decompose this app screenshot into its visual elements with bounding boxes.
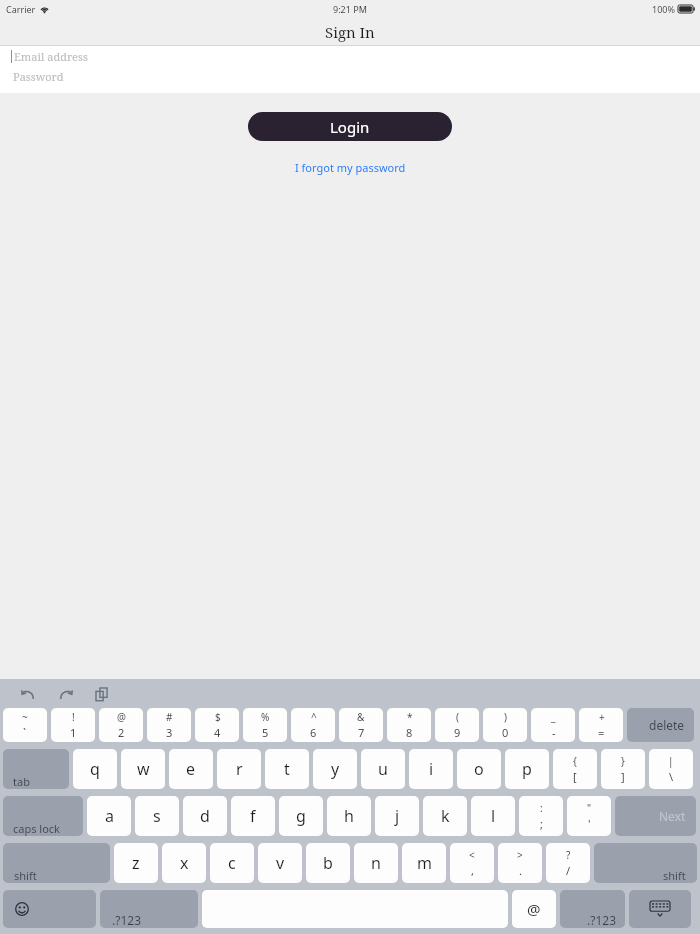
button[interactable]: q <box>73 749 117 789</box>
button[interactable]: b <box>306 843 350 883</box>
button[interactable]: Next <box>615 796 696 836</box>
button[interactable]: h <box>327 796 371 836</box>
button[interactable]: o <box>457 749 501 789</box>
staticText: Login <box>330 117 370 137</box>
button[interactable]: " <box>567 796 611 836</box>
button[interactable]: + <box>579 708 623 742</box>
staticText: + <box>599 710 605 724</box>
button[interactable]: delete <box>627 708 694 742</box>
staticText: .?123 <box>112 912 142 928</box>
staticText: Password <box>13 69 64 84</box>
button[interactable]: Login <box>248 112 452 141</box>
staticText: delete <box>649 717 685 733</box>
staticText: 8 <box>406 725 413 740</box>
staticText: s <box>153 805 161 827</box>
button[interactable]: ( <box>435 708 479 742</box>
staticText: n <box>371 852 381 874</box>
button[interactable]: c <box>210 843 254 883</box>
button[interactable]: } <box>601 749 645 789</box>
button[interactable]: _ <box>531 708 575 742</box>
button[interactable]: s <box>135 796 179 836</box>
staticText: d <box>200 805 210 827</box>
staticText: r <box>236 758 243 780</box>
button[interactable]: .?123 <box>560 890 625 928</box>
staticText: q <box>90 758 100 780</box>
button[interactable]: Redo <box>53 682 77 706</box>
button[interactable]: { <box>553 749 597 789</box>
button[interactable]: Password <box>0 66 700 86</box>
staticText: ( <box>456 710 459 724</box>
staticText: ] <box>621 769 625 784</box>
button[interactable]: ? <box>546 843 590 883</box>
staticText: & <box>357 710 365 724</box>
button[interactable]: ! <box>51 708 95 742</box>
staticText: | <box>668 754 674 768</box>
button[interactable]: & <box>339 708 383 742</box>
button[interactable]: tab <box>3 749 69 789</box>
button[interactable]: $ <box>195 708 239 742</box>
button[interactable]: ^ <box>291 708 335 742</box>
button[interactable]: k <box>423 796 467 836</box>
staticText: caps lock <box>13 821 60 836</box>
staticText: ; <box>540 816 543 831</box>
button[interactable]: v <box>258 843 302 883</box>
button[interactable]: m <box>402 843 446 883</box>
button[interactable]: caps lock <box>3 796 83 836</box>
staticText: shift <box>663 868 686 883</box>
button[interactable]: r <box>217 749 261 789</box>
button[interactable]: a <box>87 796 131 836</box>
staticText: / <box>566 863 571 878</box>
button[interactable]: < <box>450 843 494 883</box>
button[interactable]: ) <box>483 708 527 742</box>
button[interactable]: ~ <box>3 708 47 742</box>
button[interactable]: t <box>265 749 309 789</box>
button[interactable]: * <box>387 708 431 742</box>
button[interactable]: .?123 <box>100 890 198 928</box>
staticText: Email address <box>14 49 88 64</box>
button[interactable]: I forgot my password <box>289 158 412 177</box>
button[interactable]: shift <box>3 843 110 883</box>
staticText: t <box>284 758 290 780</box>
staticText: 1 <box>70 725 77 740</box>
button[interactable]: j <box>375 796 419 836</box>
button[interactable]: # <box>147 708 191 742</box>
staticText: } <box>621 754 625 768</box>
button[interactable]: | <box>649 749 693 789</box>
staticText: tab <box>13 774 30 789</box>
staticText: y <box>331 758 340 780</box>
staticText: { <box>573 754 577 768</box>
button[interactable]: p <box>505 749 549 789</box>
button[interactable]: g <box>279 796 323 836</box>
staticText: Next <box>659 808 686 824</box>
button[interactable]: : <box>519 796 563 836</box>
button[interactable]: @ <box>512 890 556 928</box>
staticText: p <box>522 758 532 780</box>
button[interactable]: Paste <box>90 682 114 706</box>
button[interactable]: z <box>114 843 158 883</box>
button[interactable]: e <box>169 749 213 789</box>
staticText: o <box>474 758 484 780</box>
button[interactable]: @ <box>99 708 143 742</box>
button[interactable]: Email address <box>0 46 700 66</box>
staticText: h <box>344 805 354 827</box>
staticText: < <box>469 848 475 862</box>
button[interactable]: u <box>361 749 405 789</box>
button[interactable]: > <box>498 843 542 883</box>
button[interactable]: f <box>231 796 275 836</box>
button[interactable]: y <box>313 749 357 789</box>
button[interactable]: Emoji <box>3 890 96 928</box>
button[interactable]: Undo <box>16 682 40 706</box>
button[interactable]: x <box>162 843 206 883</box>
button[interactable]: i <box>409 749 453 789</box>
button[interactable]: shift <box>594 843 697 883</box>
button[interactable]: % <box>243 708 287 742</box>
staticText: 0 <box>502 725 509 740</box>
button[interactable]: l <box>471 796 515 836</box>
button[interactable]: w <box>121 749 165 789</box>
button[interactable]: d <box>183 796 227 836</box>
button[interactable]: Hide keyboard <box>629 890 691 928</box>
button[interactable]: n <box>354 843 398 883</box>
staticText: - <box>552 725 556 740</box>
